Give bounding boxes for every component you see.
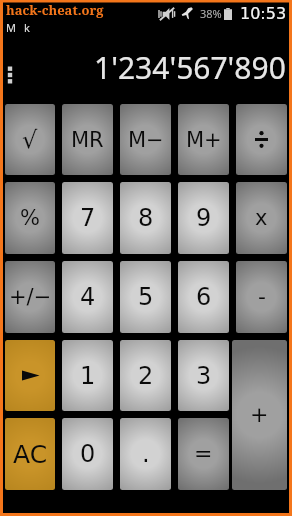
staticText: 6 xyxy=(196,283,212,311)
button[interactable]: 7 xyxy=(62,182,113,254)
button[interactable]: 6 xyxy=(178,261,229,333)
staticText: . xyxy=(142,440,150,468)
button[interactable]: Decimal point xyxy=(120,418,171,490)
staticText: 4 xyxy=(80,283,96,311)
staticText: k xyxy=(24,20,30,35)
button[interactable]: 3 xyxy=(178,340,229,411)
staticText: 0 xyxy=(80,440,96,468)
button[interactable]: 9 xyxy=(178,182,229,254)
button[interactable]: +/− xyxy=(5,261,55,333)
button[interactable]: Divide xyxy=(236,104,287,175)
button[interactable]: Equals xyxy=(178,418,229,490)
button[interactable]: 4 xyxy=(62,261,113,333)
button[interactable]: 5 xyxy=(120,261,171,333)
button[interactable]: Backspace xyxy=(5,340,55,411)
staticText: 38% xyxy=(200,6,222,21)
staticText: 9 xyxy=(196,204,212,232)
staticText: 1'234'567'890 xyxy=(94,47,286,88)
button[interactable]: M− xyxy=(120,104,171,175)
button[interactable]: 0 xyxy=(62,418,113,490)
button[interactable]: 8 xyxy=(120,182,171,254)
button[interactable]: 1 xyxy=(62,340,113,411)
button[interactable]: More options xyxy=(3,64,17,86)
button[interactable]: M+ xyxy=(178,104,229,175)
staticText: - xyxy=(258,284,266,310)
button[interactable]: Multiply xyxy=(236,182,287,254)
staticText: 8 xyxy=(138,204,154,232)
staticText: 10:53 xyxy=(240,4,287,23)
staticText: M xyxy=(6,20,16,35)
staticText: 7 xyxy=(80,204,96,232)
staticText: MR xyxy=(71,128,104,152)
button[interactable]: Minus xyxy=(236,261,287,333)
staticText: 1 xyxy=(80,362,96,390)
staticText: 3 xyxy=(196,362,212,390)
button[interactable]: AC xyxy=(5,418,55,490)
staticText: M+ xyxy=(186,128,222,152)
staticText: +/− xyxy=(9,285,52,309)
button[interactable]: 2 xyxy=(120,340,171,411)
button[interactable]: % xyxy=(5,182,55,254)
staticText: + xyxy=(250,402,269,428)
staticText: M− xyxy=(128,128,164,152)
staticText: x xyxy=(255,206,268,230)
staticText: √ xyxy=(22,126,38,154)
button[interactable]: Plus xyxy=(232,340,287,490)
staticText: 5 xyxy=(138,283,154,311)
staticText: = xyxy=(194,441,213,467)
button[interactable]: Square root xyxy=(5,104,55,175)
button[interactable]: MR xyxy=(62,104,113,175)
staticText: 2 xyxy=(138,362,154,390)
staticText: AC xyxy=(13,440,48,469)
staticText: hack-cheat.org xyxy=(6,1,104,19)
staticText: % xyxy=(20,206,40,230)
